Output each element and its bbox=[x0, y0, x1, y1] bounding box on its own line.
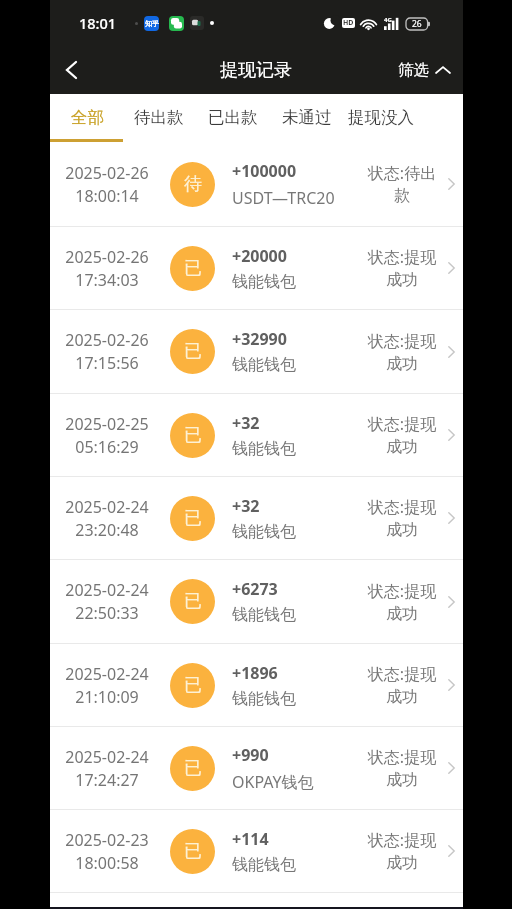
staticText: 知乎 bbox=[145, 19, 159, 28]
staticText: 2025-02-23 18:00:58 bbox=[65, 829, 149, 874]
button[interactable]: 2025-02-26 17:15:56 bbox=[50, 310, 463, 393]
staticText: 钱能钱包 bbox=[232, 355, 296, 375]
staticText: 已出款 bbox=[208, 107, 258, 128]
staticText: USDT—TRC20 bbox=[232, 187, 335, 209]
staticText: 2025-02-24 22:50:33 bbox=[65, 579, 149, 624]
button[interactable]: 提现没入 bbox=[341, 94, 421, 139]
staticText: 状态:提现成功 bbox=[365, 580, 439, 624]
button[interactable]: 全部 bbox=[51, 94, 124, 139]
staticText: 已 bbox=[184, 757, 202, 780]
staticText: 2025-02-24 17:24:27 bbox=[65, 746, 149, 791]
staticText: 待 bbox=[184, 173, 202, 196]
button[interactable]: 2025-02-26 17:34:03 bbox=[50, 227, 463, 309]
staticText: 筛选 bbox=[398, 60, 429, 80]
staticText: HD bbox=[343, 18, 354, 28]
staticText: 2025-02-26 17:15:56 bbox=[65, 329, 149, 374]
staticText: 已 bbox=[184, 840, 202, 863]
staticText: 18:01 bbox=[79, 13, 117, 33]
staticText: +32 bbox=[232, 495, 260, 517]
button[interactable]: 筛选 bbox=[392, 50, 457, 90]
staticText: 状态:提现成功 bbox=[365, 663, 439, 707]
staticText: +100000 bbox=[232, 160, 297, 182]
staticText: 全部 bbox=[71, 107, 104, 128]
staticText: 2025-02-26 18:00:14 bbox=[65, 162, 149, 207]
staticText: 2025-02-25 05:16:29 bbox=[65, 413, 149, 458]
button[interactable]: 2025-02-24 21:10:09 bbox=[50, 644, 463, 726]
staticText: 状态:提现成功 bbox=[365, 746, 439, 790]
staticText: 钱能钱包 bbox=[232, 855, 296, 875]
button[interactable]: 已出款 bbox=[196, 94, 270, 139]
staticText: 已 bbox=[184, 507, 202, 530]
staticText: +990 bbox=[232, 744, 269, 766]
button[interactable]: 2025-02-26 18:00:14 bbox=[50, 142, 463, 226]
staticText: +20000 bbox=[232, 245, 287, 267]
button[interactable]: 2025-02-24 23:20:48 bbox=[50, 477, 463, 559]
button[interactable]: 2025-02-24 17:24:27 bbox=[50, 727, 463, 809]
staticText: 钱能钱包 bbox=[232, 605, 296, 625]
staticText: 已 bbox=[184, 424, 202, 447]
staticText: 已 bbox=[184, 257, 202, 280]
staticText: +114 bbox=[232, 828, 269, 850]
staticText: 钱能钱包 bbox=[232, 689, 296, 709]
staticText: 状态:待出款 bbox=[365, 162, 439, 206]
staticText: 状态:提现成功 bbox=[365, 829, 439, 873]
staticText: 待出款 bbox=[134, 107, 184, 128]
staticText: 钱能钱包 bbox=[232, 522, 296, 542]
staticText: 已 bbox=[184, 340, 202, 363]
staticText: 未通过 bbox=[282, 107, 332, 128]
staticText: 已 bbox=[184, 590, 202, 613]
staticText: 状态:提现成功 bbox=[365, 413, 439, 457]
staticText: 状态:提现成功 bbox=[365, 330, 439, 374]
staticText: OKPAY钱包 bbox=[232, 771, 314, 793]
button[interactable]: 未通过 bbox=[270, 94, 344, 139]
staticText: 4G bbox=[384, 16, 392, 24]
staticText: 2025-02-24 21:10:09 bbox=[65, 663, 149, 708]
staticText: 提现没入 bbox=[348, 107, 414, 128]
staticText: 已 bbox=[184, 674, 202, 697]
staticText: 钱能钱包 bbox=[232, 272, 296, 292]
staticText: +32990 bbox=[232, 328, 287, 350]
button[interactable]: 2025-02-25 05:16:29 bbox=[50, 394, 463, 476]
staticText: +6273 bbox=[232, 578, 278, 600]
staticText: 2025-02-26 17:34:03 bbox=[65, 246, 149, 291]
button[interactable]: 待出款 bbox=[122, 94, 195, 139]
staticText: +1896 bbox=[232, 662, 278, 684]
staticText: 状态:提现成功 bbox=[365, 246, 439, 290]
button[interactable]: 2025-02-23 18:00:58 bbox=[50, 810, 463, 892]
staticText: 状态:提现成功 bbox=[365, 496, 439, 540]
staticText: 钱能钱包 bbox=[232, 439, 296, 459]
staticText: 2025-02-24 23:20:48 bbox=[65, 496, 149, 541]
button[interactable]: Back bbox=[50, 49, 92, 91]
staticText: 提现记录 bbox=[220, 59, 292, 82]
button[interactable]: 2025-02-24 22:50:33 bbox=[50, 560, 463, 643]
staticText: +32 bbox=[232, 412, 260, 434]
staticText: 26 bbox=[412, 18, 422, 30]
